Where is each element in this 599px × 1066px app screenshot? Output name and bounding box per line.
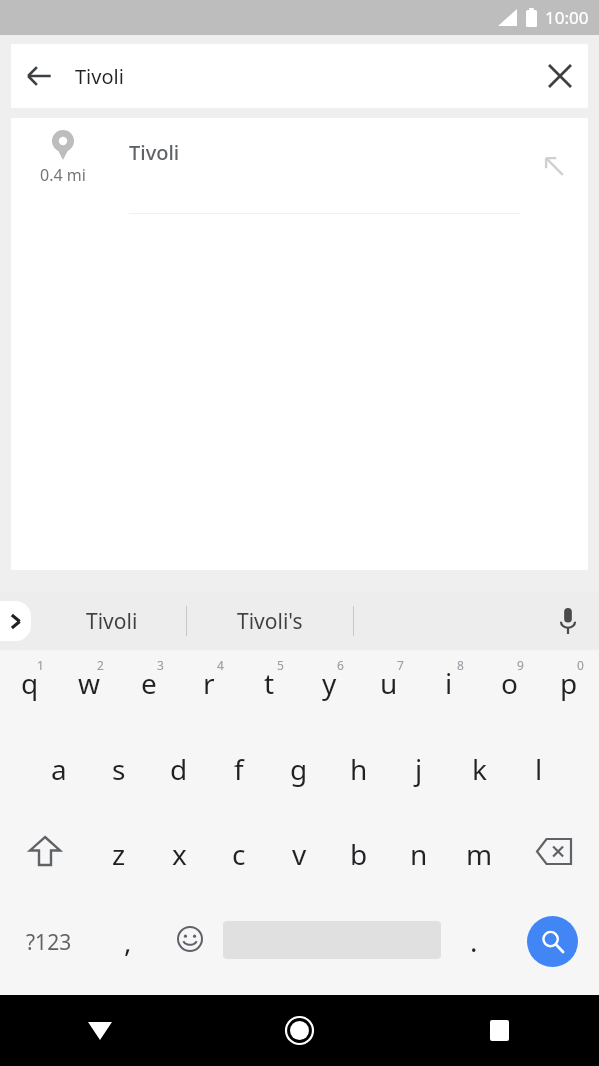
staticText: Tivoli xyxy=(129,139,180,166)
button[interactable]: s xyxy=(89,738,149,823)
button[interactable]: Back xyxy=(11,48,67,104)
staticText: i xyxy=(445,664,453,702)
button[interactable]: Space xyxy=(221,908,443,995)
button[interactable]: 3 xyxy=(119,650,179,738)
staticText: a xyxy=(51,750,67,788)
staticText: v xyxy=(292,835,307,873)
staticText: ?123 xyxy=(26,928,72,957)
staticText: r xyxy=(203,664,215,702)
staticText: 3 xyxy=(157,657,164,673)
button[interactable]: Backspace xyxy=(509,823,599,908)
button[interactable]: f xyxy=(209,738,269,823)
staticText: p xyxy=(560,664,578,702)
staticText: l xyxy=(535,750,543,788)
staticText: . xyxy=(470,922,478,960)
button[interactable]: d xyxy=(149,738,209,823)
staticText: 5 xyxy=(277,657,284,673)
button[interactable]: z xyxy=(89,823,149,908)
button[interactable]: v xyxy=(269,823,329,908)
staticText: 4 xyxy=(217,657,224,673)
staticText: Tivoli xyxy=(86,607,138,636)
button[interactable]: l xyxy=(509,738,569,823)
staticText: q xyxy=(21,664,39,702)
staticText: m xyxy=(466,835,493,873)
button[interactable]: a xyxy=(29,738,89,823)
staticText: 1 xyxy=(37,657,44,673)
button[interactable]: 0 xyxy=(539,650,599,738)
staticText: s xyxy=(112,750,126,788)
staticText: 6 xyxy=(337,657,344,673)
button[interactable]: Fill in search xyxy=(520,118,588,214)
staticText: f xyxy=(234,750,244,788)
button[interactable]: 2 xyxy=(59,650,119,738)
button[interactable]: x xyxy=(149,823,209,908)
staticText: 8 xyxy=(457,657,464,673)
button[interactable]: Search xyxy=(505,908,599,995)
button[interactable]: Tivoli's xyxy=(187,592,353,650)
button[interactable]: m xyxy=(449,823,509,908)
staticText: k xyxy=(472,750,487,788)
staticText: c xyxy=(232,835,246,873)
staticText: e xyxy=(141,664,157,702)
button[interactable]: Back xyxy=(0,995,199,1066)
staticText: , xyxy=(124,922,132,960)
button[interactable]: 6 xyxy=(299,650,359,738)
staticText: o xyxy=(501,664,518,702)
staticText: u xyxy=(380,664,398,702)
staticText: w xyxy=(78,664,101,702)
button[interactable]: 1 xyxy=(0,650,59,738)
button[interactable]: Expand suggestions xyxy=(0,601,31,641)
staticText: g xyxy=(290,750,308,788)
button[interactable]: h xyxy=(329,738,389,823)
button[interactable]: . xyxy=(443,908,505,995)
staticText: 7 xyxy=(397,657,404,673)
staticText: 0 xyxy=(577,657,584,673)
staticText: Tivoli xyxy=(75,63,532,90)
staticText: n xyxy=(410,835,428,873)
button[interactable]: c xyxy=(209,823,269,908)
staticText: 2 xyxy=(97,657,104,673)
button[interactable]: b xyxy=(329,823,389,908)
button[interactable]: j xyxy=(389,738,449,823)
staticText: 0.4 mi xyxy=(40,164,86,186)
button[interactable]: Voice input xyxy=(537,592,599,650)
button[interactable]: , xyxy=(97,908,159,995)
button[interactable]: Emoji xyxy=(159,908,221,995)
staticText: x xyxy=(172,835,187,873)
staticText: 9 xyxy=(517,657,524,673)
button[interactable]: Home xyxy=(199,995,399,1066)
button[interactable]: 0.4 mi xyxy=(11,118,588,214)
staticText: t xyxy=(264,664,275,702)
staticText: y xyxy=(322,664,337,702)
button[interactable]: Recents xyxy=(399,995,599,1066)
button[interactable]: Tivoli xyxy=(38,592,186,650)
staticText: 10:00 xyxy=(545,6,589,29)
button[interactable]: n xyxy=(389,823,449,908)
button[interactable]: g xyxy=(269,738,329,823)
staticText: j xyxy=(415,750,423,788)
button[interactable]: k xyxy=(449,738,509,823)
button[interactable]: 8 xyxy=(419,650,479,738)
button[interactable]: 9 xyxy=(479,650,539,738)
staticText: Tivoli's xyxy=(237,607,303,636)
button[interactable]: Shift xyxy=(0,823,89,908)
button[interactable]: 7 xyxy=(359,650,419,738)
staticText: h xyxy=(350,750,368,788)
button[interactable]: Clear xyxy=(532,48,588,104)
staticText: d xyxy=(170,750,188,788)
staticText: z xyxy=(112,835,126,873)
button[interactable]: ?123 xyxy=(0,908,97,995)
staticText: b xyxy=(350,835,368,873)
button[interactable]: 4 xyxy=(179,650,239,738)
button[interactable]: 5 xyxy=(239,650,299,738)
